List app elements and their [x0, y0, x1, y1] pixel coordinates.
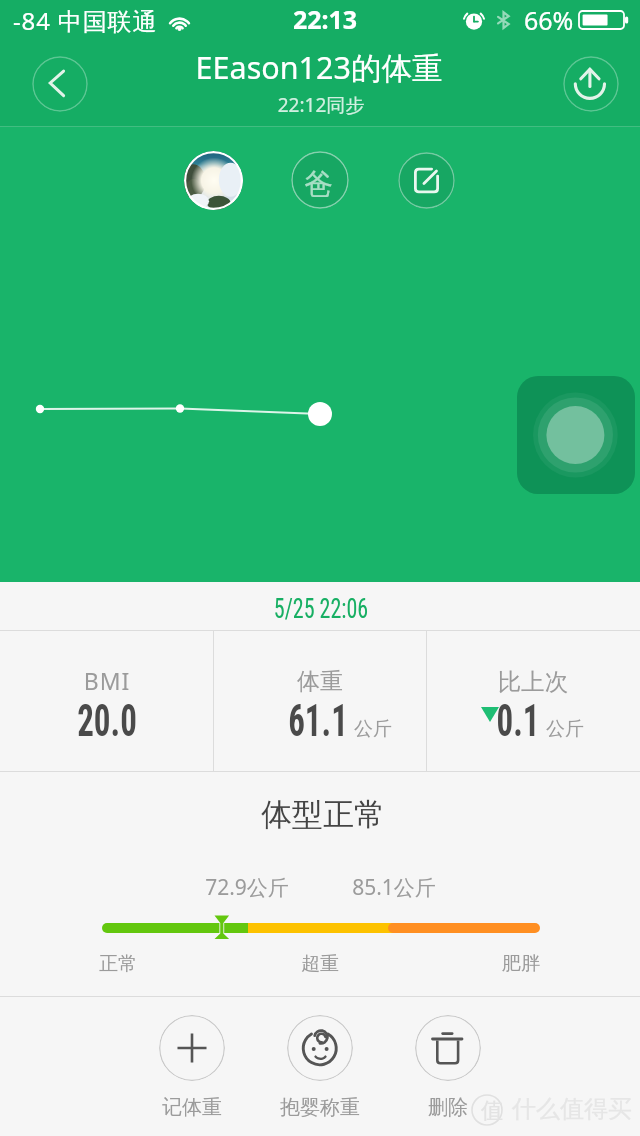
button[interactable]: Edit	[398, 152, 455, 209]
staticText: 正常	[0, 952, 338, 976]
staticText: 值	[481, 1097, 493, 1125]
staticText: 爸	[291, 166, 348, 203]
button[interactable]: Profile photo	[184, 151, 243, 210]
staticText: 20.0	[0, 695, 272, 747]
staticText: 22:12同步	[101, 92, 541, 118]
button[interactable]: 删除	[396, 1008, 500, 1128]
staticText: 超重	[100, 952, 540, 976]
button[interactable]: 爸	[291, 151, 349, 209]
staticText: 61.1	[153, 695, 483, 747]
staticText: 85.1公斤	[174, 873, 614, 902]
staticText: 72.9公斤	[27, 873, 467, 902]
staticText: BMI	[0, 665, 327, 696]
staticText: 抱婴称重	[268, 1095, 372, 1120]
button[interactable]: Weight scale	[517, 376, 635, 494]
staticText: 22:13	[105, 2, 545, 36]
staticText: 体重	[100, 667, 540, 696]
staticText: 什么值得买	[512, 1094, 632, 1124]
button[interactable]: 记体重	[140, 1008, 244, 1128]
button[interactable]: 抱婴称重	[268, 1008, 372, 1128]
staticText: 公斤	[153, 717, 593, 741]
button[interactable]: Back	[32, 56, 88, 112]
staticText: 肥胖	[301, 952, 640, 976]
staticText: 公斤	[345, 717, 640, 741]
staticText: EEason123的体重	[99, 46, 539, 88]
button[interactable]: 体重 61.1 公斤	[214, 632, 426, 770]
staticText: 0.1	[353, 695, 640, 747]
staticText: 体型正常	[103, 795, 543, 834]
staticText: 比上次	[313, 667, 640, 697]
button[interactable]: BMI 20.0	[0, 632, 213, 770]
staticText: 删除	[396, 1095, 500, 1120]
staticText: 记体重	[140, 1095, 244, 1120]
staticText: 5/25 22:06	[148, 592, 494, 625]
button[interactable]: Share	[563, 56, 619, 112]
button[interactable]: 比上次 0.1 公斤	[427, 632, 640, 770]
staticText: 66%	[524, 3, 574, 37]
staticText: -84 中国联通	[13, 4, 158, 37]
